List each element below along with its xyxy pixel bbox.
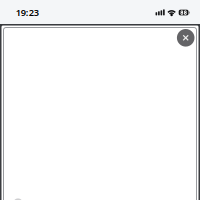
button[interactable]: Page action <box>13 198 22 200</box>
button[interactable]: Close <box>177 29 194 47</box>
staticText: 19:23 <box>16 6 39 19</box>
